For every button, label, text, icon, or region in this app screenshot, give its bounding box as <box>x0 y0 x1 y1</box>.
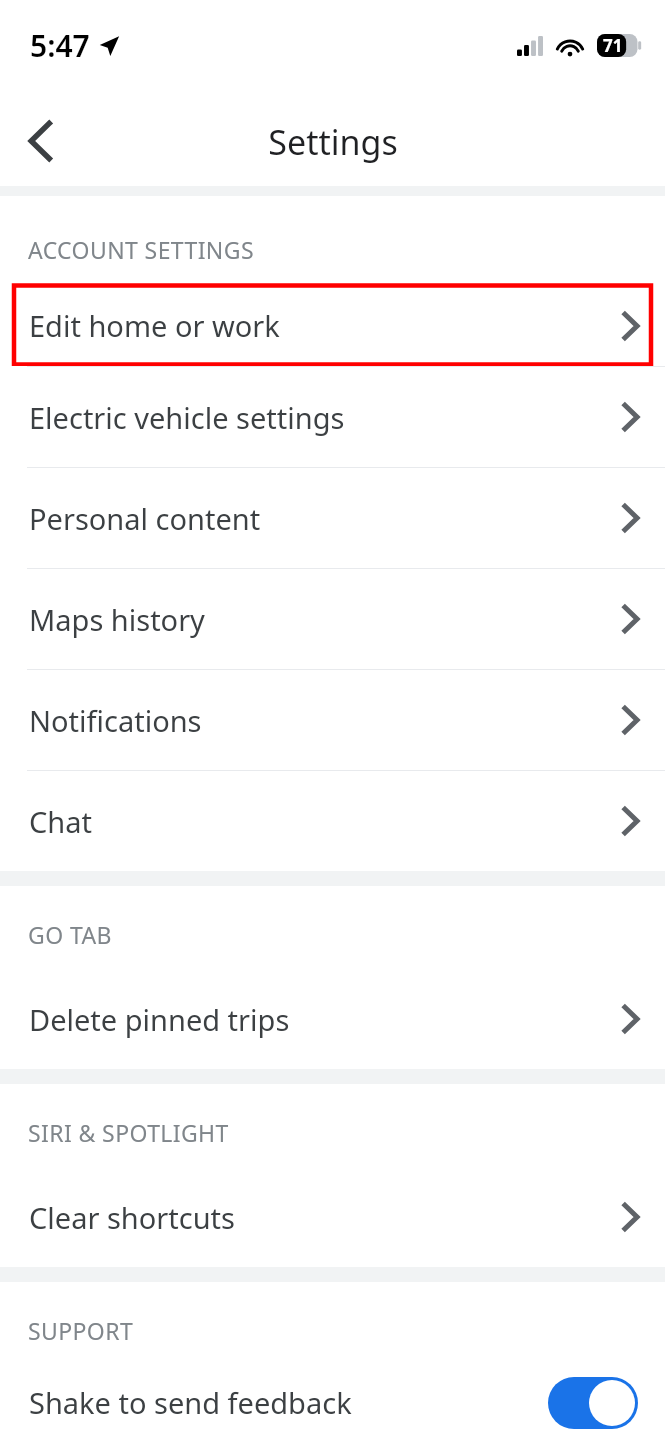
button[interactable]: Chat <box>0 771 665 871</box>
staticText: Personal content <box>29 499 261 538</box>
button[interactable]: Edit home or work <box>0 284 665 366</box>
staticText: Edit home or work <box>29 306 280 345</box>
button[interactable]: Personal content <box>0 468 665 568</box>
staticText: Maps history <box>29 600 205 639</box>
staticText: GO TAB <box>28 919 112 950</box>
staticText: Settings <box>268 119 398 165</box>
button[interactable]: Maps history <box>0 569 665 669</box>
staticText: 5:47 <box>30 25 90 66</box>
button[interactable]: Back <box>2 103 78 179</box>
staticText: Notifications <box>29 701 202 740</box>
button[interactable]: Notifications <box>0 670 665 770</box>
staticText: 71 <box>603 34 623 57</box>
staticText: Clear shortcuts <box>29 1198 235 1237</box>
staticText: Electric vehicle settings <box>29 398 345 437</box>
staticText: ACCOUNT SETTINGS <box>28 234 254 265</box>
staticText: Chat <box>29 802 92 841</box>
button[interactable]: Shake to send feedback <box>0 1365 665 1440</box>
button[interactable]: Clear shortcuts <box>0 1167 665 1267</box>
staticText: SUPPORT <box>28 1315 134 1346</box>
staticText: Shake to send feedback <box>29 1383 352 1422</box>
staticText: Delete pinned trips <box>29 1000 290 1039</box>
staticText: SIRI & SPOTLIGHT <box>28 1117 229 1148</box>
button[interactable]: Electric vehicle settings <box>0 367 665 467</box>
button[interactable]: Delete pinned trips <box>0 969 665 1069</box>
